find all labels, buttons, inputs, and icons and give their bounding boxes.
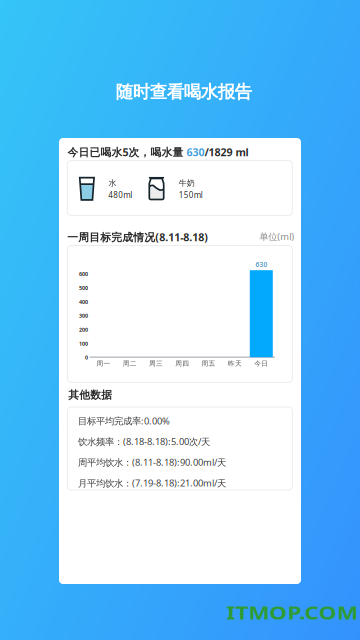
- staticText: 500: [79, 284, 88, 291]
- staticText: 一周目标完成情况(8.11-8.18): [67, 230, 208, 244]
- staticText: 400: [79, 298, 88, 305]
- staticText: 150ml: [179, 189, 203, 200]
- staticText: 单位(ml): [259, 230, 294, 243]
- staticText: 其他数据: [68, 388, 112, 401]
- staticText: 周平均饮水：(8.11-8.18):90.00ml/天: [78, 456, 226, 468]
- staticText: 目标平均完成率:0.00%: [78, 415, 170, 427]
- staticText: 480ml: [108, 189, 132, 200]
- staticText: 周五: [202, 359, 216, 368]
- staticText: 昨天: [228, 359, 242, 368]
- staticText: ITMOP.COM: [242, 601, 343, 624]
- staticText: 周一: [96, 359, 110, 368]
- staticText: 随时查看喝水报告: [116, 81, 252, 103]
- staticText: 周二: [123, 359, 137, 368]
- staticText: 100: [79, 340, 88, 347]
- staticText: 630: [255, 260, 267, 269]
- staticText: /1829 ml: [204, 145, 248, 159]
- staticText: 600: [79, 270, 88, 278]
- staticText: 200: [79, 326, 88, 333]
- staticText: 630: [186, 145, 204, 159]
- staticText: 今日已喝水5次，喝水量: [67, 145, 186, 159]
- staticText: 饮水频率：(8.18-8.18):5.00次/天: [78, 435, 210, 448]
- staticText: 今日: [254, 359, 268, 368]
- staticText: 周四: [175, 359, 189, 368]
- staticText: 300: [79, 312, 88, 319]
- staticText: 月平均饮水：(7.19-8.18):21.00ml/天: [78, 477, 226, 489]
- staticText: 水: [108, 178, 116, 188]
- staticText: 周三: [149, 359, 163, 368]
- staticText: 牛奶: [179, 178, 195, 188]
- staticText: 0: [85, 354, 88, 361]
